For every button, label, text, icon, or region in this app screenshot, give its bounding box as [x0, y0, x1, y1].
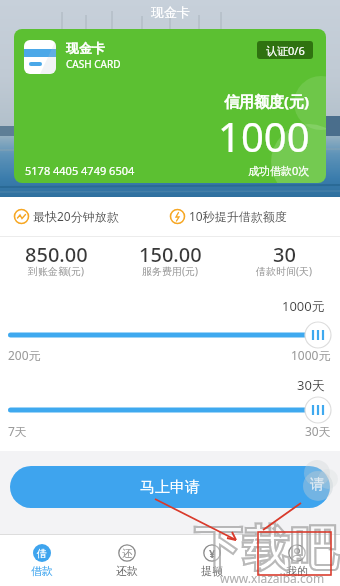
staticText: 借款: [31, 564, 53, 578]
staticText: 还款: [116, 564, 138, 578]
staticText: 5178 4405 4749 6504: [25, 163, 135, 178]
staticText: 借款时间(天): [256, 264, 312, 278]
staticText: 借: [37, 547, 47, 560]
staticText: 7天: [8, 423, 27, 439]
staticText: 150.00: [139, 241, 202, 263]
staticText: 200元: [8, 347, 41, 363]
staticText: 提额: [201, 564, 223, 578]
staticText: 到账金额(元): [28, 264, 84, 278]
staticText: 最快20分钟放款: [33, 208, 119, 224]
staticText: 请: [310, 476, 324, 494]
staticText: 信用额度(元): [224, 91, 310, 111]
staticText: ¥: [209, 546, 216, 561]
staticText: 成功借款0次: [248, 163, 310, 178]
staticText: 现金卡: [66, 40, 105, 56]
staticText: 还: [122, 547, 132, 560]
staticText: 下载吧: [194, 519, 338, 579]
staticText: 下载吧: [194, 519, 338, 579]
staticText: 1000: [218, 109, 310, 157]
staticText: 现金卡: [151, 4, 190, 20]
staticText: 30: [273, 241, 296, 263]
staticText: 认证0/6: [266, 43, 305, 58]
staticText: 1000元: [282, 297, 325, 315]
staticText: 服务费用(元): [142, 264, 198, 278]
staticText: 30天: [297, 376, 325, 394]
staticText: 10秒提升借款额度: [189, 208, 287, 224]
staticText: 马上申请: [140, 478, 200, 497]
staticText: 850.00: [25, 241, 88, 263]
staticText: CASH CARD: [66, 57, 121, 71]
staticText: www.xiazaiba.com: [220, 570, 325, 585]
staticText: 我的: [286, 564, 308, 578]
staticText: 30天: [305, 423, 331, 439]
staticText: 1000元: [291, 347, 331, 363]
